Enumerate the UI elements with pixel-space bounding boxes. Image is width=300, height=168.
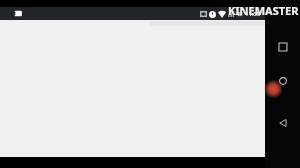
button[interactable]: Recent apps (274, 38, 291, 55)
staticText: 11:39 (245, 10, 261, 18)
button[interactable]: Home (274, 72, 291, 89)
staticText: KINEMASTER (228, 3, 299, 18)
button[interactable]: Back (274, 114, 291, 131)
